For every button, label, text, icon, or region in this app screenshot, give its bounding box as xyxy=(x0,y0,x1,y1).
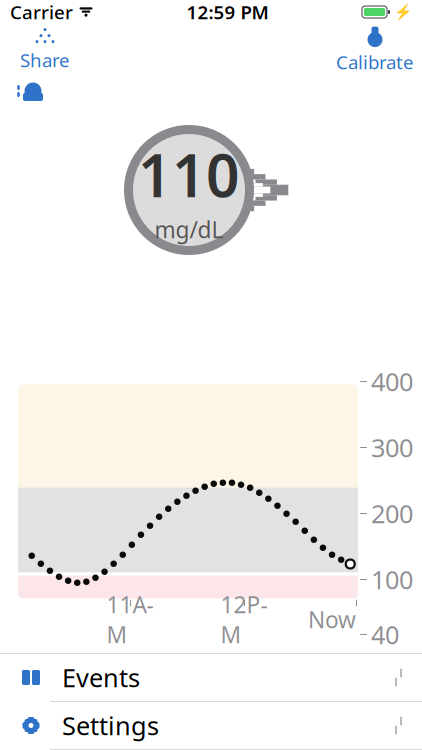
button[interactable]: Alerts xyxy=(8,76,52,106)
button[interactable]: Share xyxy=(8,22,82,76)
staticText: 200 xyxy=(371,497,413,530)
staticText: Carrier xyxy=(10,0,73,24)
staticText: 300 xyxy=(371,431,413,464)
staticText: Now xyxy=(308,604,356,634)
staticText: 100 xyxy=(371,563,413,596)
staticText: 11AM xyxy=(106,589,153,650)
staticText: Settings xyxy=(62,709,159,742)
staticText: 12PM xyxy=(220,589,267,650)
staticText: Events xyxy=(62,661,140,694)
button[interactable]: Settings xyxy=(0,702,422,749)
staticText: 40 xyxy=(371,618,399,651)
staticText: 400 xyxy=(371,365,413,398)
staticText: Share xyxy=(20,48,70,72)
staticText: 12:59 PM xyxy=(186,0,268,24)
button[interactable]: Events xyxy=(0,654,422,701)
staticText: mg/dL xyxy=(154,214,223,244)
staticText: 110 xyxy=(138,135,240,213)
staticText: Calibrate xyxy=(336,50,414,74)
staticText: ⚡ xyxy=(394,4,412,20)
button[interactable]: Calibrate xyxy=(336,22,414,78)
